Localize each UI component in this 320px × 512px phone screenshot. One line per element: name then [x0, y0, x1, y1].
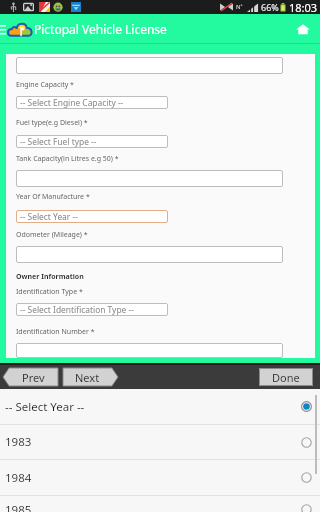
staticText: 1983: [5, 434, 32, 450]
button[interactable]: Done: [259, 368, 313, 386]
button[interactable]: Vehicle registration number: [16, 57, 283, 74]
staticText: 18:03: [289, 0, 318, 14]
button[interactable]: Identification Number: [16, 343, 283, 358]
button[interactable]: -- Select Identification Type --: [16, 303, 168, 316]
staticText: -- Select Year --: [20, 211, 78, 222]
staticText: -- Select Year --: [5, 399, 85, 415]
staticText: Done: [272, 370, 300, 385]
button[interactable]: -- Select Year --: [16, 210, 168, 223]
staticText: Next: [75, 370, 100, 385]
button[interactable]: -- Select Engine Capacity --: [16, 96, 168, 109]
staticText: 1984: [5, 470, 32, 486]
staticText: Owner Information: [16, 272, 315, 282]
staticText: Odometer (Mileage) *: [16, 230, 315, 240]
staticText: -- Select Fuel type --: [20, 136, 97, 147]
button[interactable]: -- Select Fuel type --: [16, 135, 168, 148]
staticText: -- Select Identification Type --: [20, 304, 134, 315]
staticText: -- Select Engine Capacity --: [20, 97, 124, 108]
staticText: N⁺: [236, 3, 243, 11]
staticText: Engine Capacity *: [16, 80, 315, 90]
staticText: 1985: [5, 502, 32, 512]
staticText: Year Of Manufacture *: [16, 192, 315, 202]
button[interactable]: Tank Capacity: [16, 170, 283, 187]
staticText: Fuel type(e.g Diesel) *: [16, 118, 315, 128]
staticText: Pictopal Vehicle License: [34, 21, 167, 37]
staticText: 66%: [261, 1, 279, 13]
button[interactable]: 1985: [0, 496, 320, 512]
button[interactable]: 1984: [0, 460, 320, 495]
staticText: Identification Type *: [16, 287, 315, 297]
button[interactable]: Next: [63, 368, 118, 386]
button[interactable]: 1983: [0, 425, 320, 459]
button[interactable]: -- Select Year --: [0, 389, 320, 424]
staticText: Tank Capacity(in Litres e.g 50) *: [16, 154, 315, 164]
staticText: Identification Number *: [16, 327, 315, 337]
button[interactable]: Menu: [0, 16, 6, 42]
button[interactable]: Home: [290, 16, 316, 42]
button[interactable]: Prev: [3, 368, 58, 386]
staticText: Prev: [22, 370, 45, 385]
button[interactable]: Odometer mileage: [16, 246, 283, 263]
